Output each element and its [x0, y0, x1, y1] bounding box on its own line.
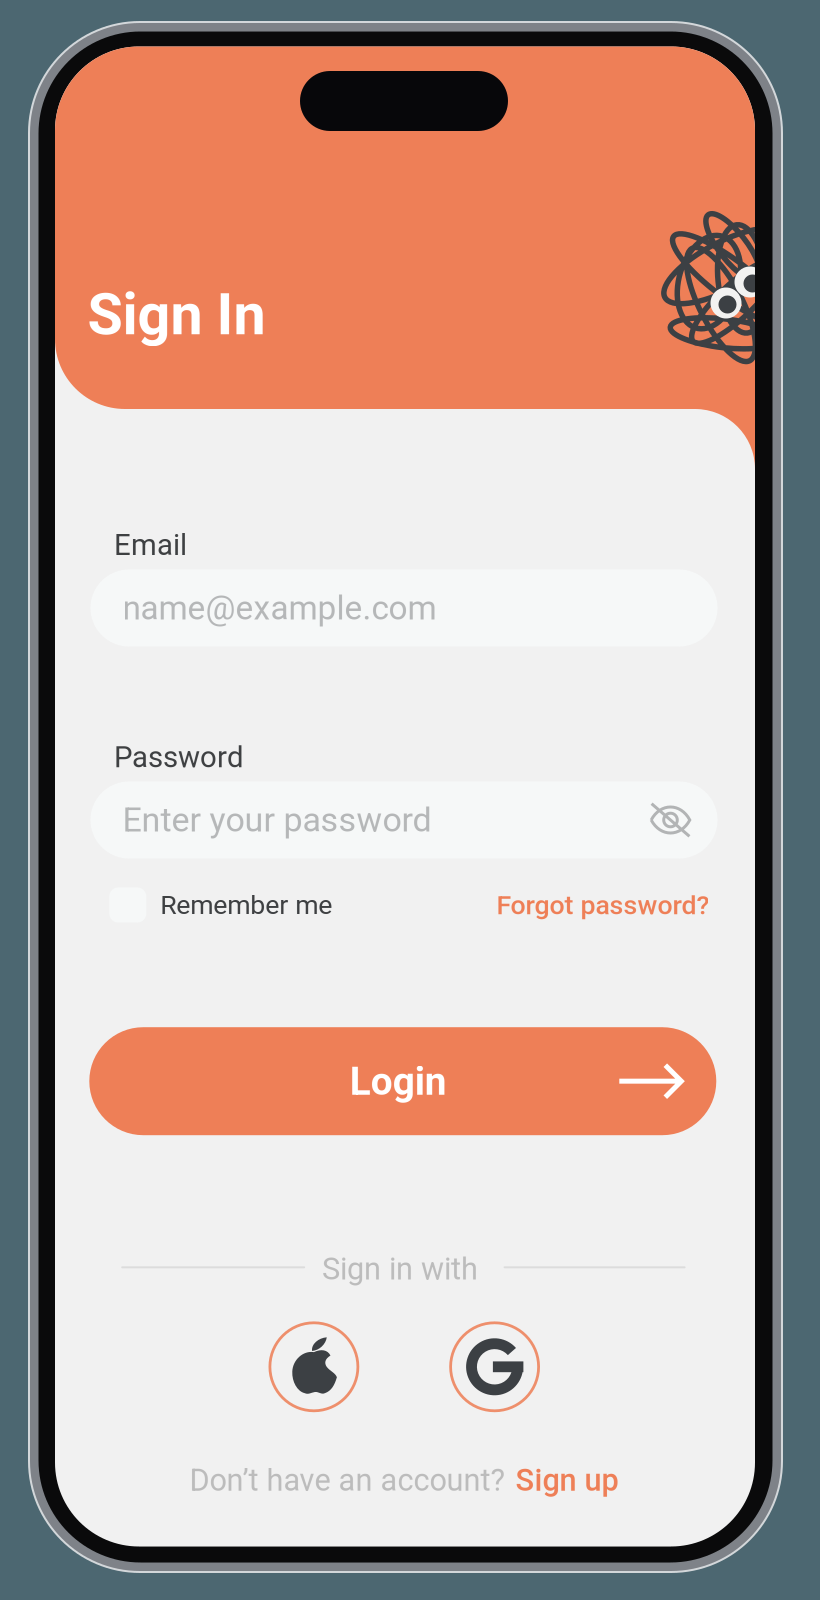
- button[interactable]: Login: [89, 1027, 716, 1135]
- staticText: Email: [114, 528, 187, 562]
- button[interactable]: Enter your password: [90, 781, 717, 858]
- staticText: Enter your password: [122, 800, 431, 840]
- button[interactable]: name@example.com: [90, 569, 717, 646]
- button[interactable]: Forgot password?: [496, 889, 709, 921]
- staticText: Login: [350, 1059, 447, 1104]
- button[interactable]: Sign in with Google: [451, 1323, 539, 1411]
- staticText: Sign up: [515, 1462, 618, 1498]
- button[interactable]: Sign in with Apple: [270, 1323, 358, 1411]
- staticText: Remember me: [160, 889, 332, 921]
- staticText: Sign In: [88, 281, 266, 348]
- button[interactable]: Don’t have an account?: [189, 1462, 618, 1498]
- staticText: name@example.com: [122, 588, 436, 628]
- staticText: Don’t have an account?: [189, 1462, 504, 1498]
- staticText: Password: [114, 740, 244, 774]
- staticText: Forgot password?: [496, 889, 709, 921]
- button[interactable]: Remember me: [109, 887, 332, 922]
- staticText: Sign in with: [322, 1251, 478, 1287]
